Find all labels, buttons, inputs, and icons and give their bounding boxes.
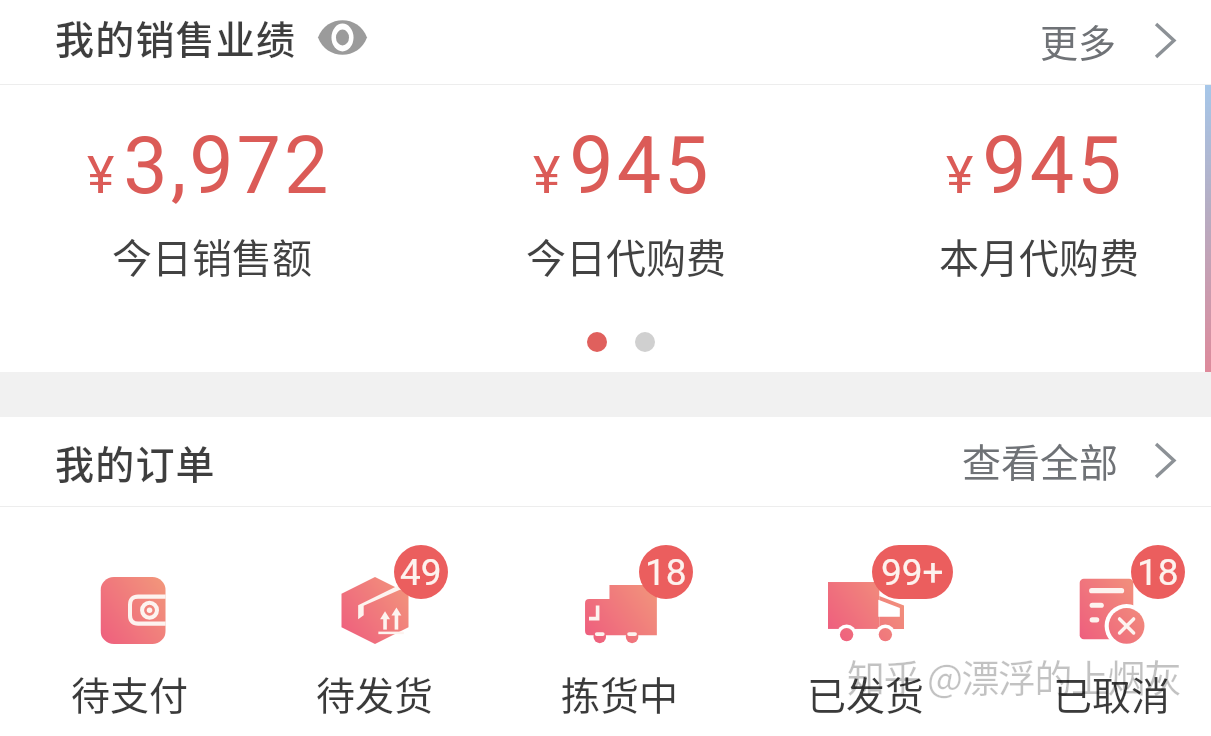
button[interactable]: 查看全部 — [944, 422, 1194, 498]
staticText: 已发货 — [807, 665, 925, 721]
staticText: 我的订单 — [55, 434, 216, 490]
staticText: ¥ 945 — [946, 120, 1125, 213]
staticText: 已取消 — [1053, 665, 1171, 721]
staticText: 49 — [400, 551, 442, 594]
button[interactable]: 18 — [497, 507, 743, 736]
staticText: 99+ — [881, 551, 944, 594]
button[interactable]: 更多 — [1022, 3, 1194, 78]
staticText: 待支付 — [71, 665, 189, 721]
staticText: 本月代购费 — [939, 227, 1139, 285]
button[interactable]: 99+ — [743, 507, 989, 736]
staticText: 知乎 @漂浮的上烟灰 — [847, 648, 1181, 703]
button[interactable]: ¥ 945 — [419, 85, 832, 372]
staticText: ¥ 3,972 — [87, 120, 332, 213]
staticText: ¥ 945 — [533, 120, 712, 213]
button[interactable]: 18 — [989, 507, 1211, 736]
staticText: 待发货 — [316, 665, 434, 721]
staticText: 18 — [645, 551, 687, 594]
staticText: 18 — [1137, 551, 1179, 594]
button[interactable]: 49 — [252, 507, 497, 736]
other: Toggle amount visibility — [316, 17, 368, 57]
staticText: 拣货中 — [561, 665, 679, 721]
staticText: 今日代购费 — [526, 227, 726, 285]
button[interactable]: 待支付 — [7, 507, 252, 736]
staticText: 我的销售业绩 — [55, 9, 297, 65]
staticText: 今日销售额 — [112, 227, 312, 285]
button[interactable]: ¥ 945 — [832, 85, 1211, 372]
staticText: 更多 — [1040, 13, 1117, 68]
staticText: 查看全部 — [962, 432, 1119, 488]
button[interactable]: 我的订单 — [0, 424, 216, 500]
button[interactable]: ¥ 3,972 — [5, 85, 419, 372]
button[interactable]: 我的销售业绩 — [0, 14, 368, 70]
